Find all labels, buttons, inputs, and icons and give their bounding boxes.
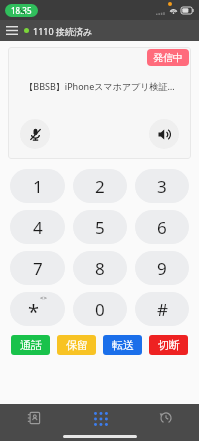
button[interactable]: 8 (73, 251, 127, 285)
button[interactable]: Speaker (149, 119, 179, 149)
staticText: 6 (157, 216, 167, 239)
staticText: 1 (33, 175, 43, 198)
button[interactable]: 9 (135, 251, 189, 285)
staticText: 切断 (158, 338, 180, 352)
button[interactable]: 5 (73, 210, 127, 244)
staticText: 18:35 (11, 5, 32, 16)
staticText: 通話 (20, 338, 42, 352)
button[interactable]: 転送 (103, 335, 142, 355)
staticText: 4 (33, 216, 43, 239)
staticText: 8 (95, 257, 105, 280)
staticText: 2 (95, 175, 105, 198)
button[interactable]: 6 (135, 210, 189, 244)
button[interactable]: Contacts (0, 404, 67, 432)
staticText: 0 (95, 298, 105, 321)
button[interactable]: 発信中 (8, 47, 191, 159)
staticText: 【BBSB】iPhoneスマホアプリ検証… (24, 80, 175, 92)
staticText: * (28, 298, 40, 325)
staticText: 発信中 (153, 51, 183, 64)
button[interactable]: 1 (10, 169, 65, 203)
button[interactable]: 4 (10, 210, 65, 244)
button[interactable]: # (135, 292, 189, 326)
staticText: 9 (157, 257, 167, 280)
button[interactable]: 通話 (11, 335, 50, 355)
staticText: 7 (33, 257, 43, 280)
staticText: 転送 (112, 338, 134, 352)
button[interactable]: 3 (135, 169, 189, 203)
button[interactable]: * (10, 292, 65, 326)
staticText: 1110 接続済み (33, 25, 93, 37)
button[interactable]: Menu (0, 20, 24, 41)
button[interactable]: 2 (73, 169, 127, 203)
button[interactable]: 0 (73, 292, 127, 326)
button[interactable]: Call history (133, 404, 199, 432)
button[interactable]: Dialpad (67, 404, 133, 432)
button[interactable]: 保留 (57, 335, 96, 355)
staticText: 5 (95, 216, 105, 239)
button[interactable]: Mute microphone (20, 119, 50, 149)
staticText: # (157, 298, 168, 321)
staticText: <> (40, 294, 47, 302)
staticText: 3 (157, 175, 167, 198)
staticText: 保留 (66, 338, 88, 352)
button[interactable]: 7 (10, 251, 65, 285)
button[interactable]: 切断 (149, 335, 188, 355)
